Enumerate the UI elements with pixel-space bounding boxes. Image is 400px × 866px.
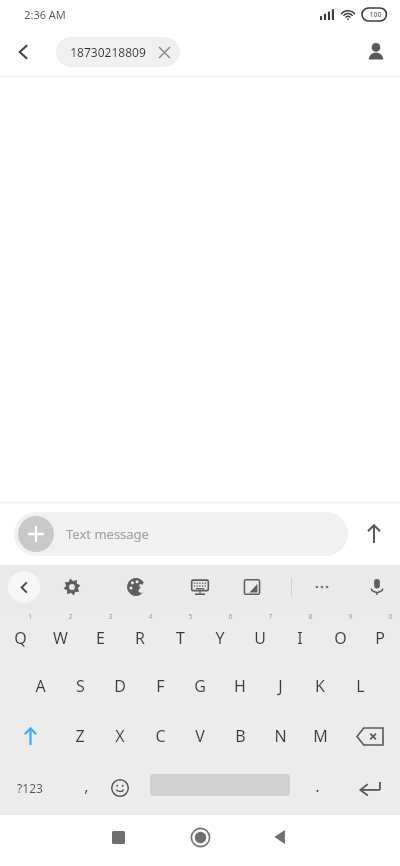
staticText: 4 (148, 612, 153, 622)
button[interactable]: Back (0, 28, 48, 76)
staticText: N (274, 725, 287, 747)
button[interactable]: . (295, 761, 339, 815)
staticText: C (155, 725, 166, 747)
button[interactable]: B (220, 711, 260, 761)
button[interactable]: L (340, 661, 380, 711)
button[interactable]: Voice input (359, 569, 395, 605)
staticText: 0 (388, 612, 393, 622)
button[interactable]: 6 (200, 609, 240, 661)
button[interactable]: Z (60, 711, 100, 761)
button[interactable]: Recent apps (86, 815, 150, 859)
staticText: , (84, 775, 89, 797)
button[interactable]: 4 (120, 609, 160, 661)
button[interactable]: Enter (340, 761, 400, 815)
button[interactable]: D (100, 661, 140, 711)
staticText: 9 (348, 612, 353, 622)
staticText: 18730218809 (70, 44, 146, 60)
staticText: J (278, 675, 283, 697)
staticText: I (297, 627, 303, 649)
staticText: 5 (188, 612, 193, 622)
button[interactable]: 18730218809 (56, 37, 180, 67)
button[interactable]: H (220, 661, 260, 711)
button[interactable]: Add attachment (14, 512, 348, 556)
button[interactable]: Floating keyboard (234, 569, 270, 605)
button[interactable]: 3 (80, 609, 120, 661)
staticText: R (135, 627, 145, 649)
button[interactable]: Back (248, 815, 312, 859)
button[interactable]: , (60, 761, 112, 815)
staticText: U (254, 627, 266, 649)
button[interactable]: More options (304, 569, 340, 605)
button[interactable]: 0 (360, 609, 400, 661)
staticText: 2 (68, 612, 73, 622)
staticText: Z (75, 725, 85, 747)
button[interactable]: Send (348, 508, 400, 560)
staticText: X (115, 725, 125, 747)
staticText: M (313, 725, 328, 747)
staticText: T (176, 627, 185, 649)
staticText: A (35, 675, 46, 697)
staticText: 8 (308, 612, 313, 622)
button[interactable]: 1 (0, 609, 40, 661)
button[interactable]: V (180, 711, 220, 761)
staticText: V (195, 725, 205, 747)
button[interactable]: Contact details (352, 28, 400, 76)
button[interactable]: 7 (240, 609, 280, 661)
staticText: 3 (108, 612, 113, 622)
button[interactable]: Emoji (98, 761, 142, 815)
staticText: G (194, 675, 206, 697)
button[interactable]: Settings (54, 569, 90, 605)
staticText: . (315, 775, 320, 797)
button[interactable]: G (180, 661, 220, 711)
staticText: O (334, 627, 347, 649)
staticText: K (315, 675, 325, 697)
staticText: F (156, 675, 165, 697)
button[interactable]: 5 (160, 609, 200, 661)
button[interactable]: N (260, 711, 300, 761)
button[interactable]: 9 (320, 609, 360, 661)
staticText: E (96, 627, 105, 649)
staticText: H (234, 675, 246, 697)
button[interactable]: Keyboard layout (182, 569, 218, 605)
button[interactable]: Theme (118, 569, 154, 605)
button[interactable]: F (140, 661, 180, 711)
staticText: ?123 (17, 780, 43, 796)
button[interactable]: Add attachment (18, 516, 54, 552)
staticText: B (235, 725, 246, 747)
staticText: 100 (369, 10, 382, 20)
staticText: Y (215, 627, 225, 649)
staticText: 7 (268, 612, 273, 622)
button[interactable]: Home (168, 815, 232, 859)
button[interactable]: ?123 (0, 761, 60, 815)
staticText: S (76, 675, 85, 697)
button[interactable]: K (300, 661, 340, 711)
staticText: D (114, 675, 126, 697)
button[interactable]: X (100, 711, 140, 761)
button[interactable]: A (20, 661, 60, 711)
button[interactable]: Shift (0, 711, 60, 761)
button[interactable]: 8 (280, 609, 320, 661)
button[interactable]: Backspace (340, 711, 400, 761)
button[interactable]: M (300, 711, 340, 761)
button[interactable]: C (140, 711, 180, 761)
button[interactable]: 2 (40, 609, 80, 661)
button[interactable]: J (260, 661, 300, 711)
staticText: 2:36 AM (24, 7, 66, 22)
staticText: W (53, 627, 68, 649)
staticText: Text message (66, 525, 149, 543)
staticText: L (356, 675, 365, 697)
button[interactable]: S (60, 661, 100, 711)
staticText: P (375, 627, 385, 649)
staticText: 6 (228, 612, 233, 622)
button[interactable]: Collapse toolbar (8, 571, 40, 603)
staticText: Q (14, 627, 27, 649)
staticText: 1 (28, 612, 33, 622)
